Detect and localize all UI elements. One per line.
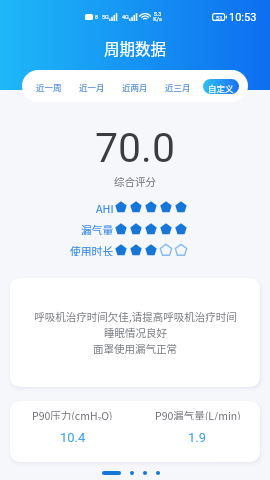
staticText: 5.3 K/s bbox=[153, 11, 162, 23]
button[interactable]: 近一月 bbox=[70, 74, 113, 98]
button[interactable]: P90压力(cmH₂O) bbox=[10, 401, 135, 462]
staticText: 1.9 bbox=[188, 430, 207, 444]
button[interactable]: 自定义 bbox=[203, 79, 239, 94]
button[interactable]: 近两月 bbox=[113, 74, 156, 98]
staticText: P90漏气量(L/min) bbox=[155, 408, 241, 420]
staticText: 周期数据 bbox=[104, 37, 167, 59]
staticText: AHI bbox=[96, 200, 114, 213]
staticText: 使用时长 bbox=[70, 243, 114, 256]
staticText: 10.4 bbox=[60, 430, 86, 444]
staticText: 近一周 bbox=[36, 81, 62, 93]
staticText: 近一月 bbox=[79, 81, 105, 93]
button[interactable]: 近一周 bbox=[28, 74, 70, 98]
staticText: 自定义 bbox=[208, 82, 234, 94]
staticText: 睡眠情况良好 bbox=[104, 325, 167, 339]
staticText: 51 bbox=[216, 14, 223, 21]
staticText: 4G bbox=[122, 14, 129, 20]
button[interactable]: 近三月 bbox=[156, 74, 199, 98]
staticText: 漏气量 bbox=[81, 222, 114, 235]
staticText: 近三月 bbox=[165, 81, 191, 93]
staticText: 综合评分 bbox=[114, 174, 156, 188]
staticText: P90压力(cmH₂O) bbox=[32, 408, 113, 420]
staticText: 近两月 bbox=[122, 81, 148, 93]
button[interactable]: P90漏气量(L/min) bbox=[135, 401, 260, 462]
staticText: 10:53 bbox=[229, 11, 257, 24]
staticText: 70.0 bbox=[95, 124, 175, 168]
staticText: 呼吸机治疗时间欠佳,请提高呼吸机治疗时间 bbox=[34, 309, 237, 323]
staticText: 5G bbox=[102, 14, 109, 20]
staticText: 8 bbox=[95, 14, 98, 20]
staticText: 面罩使用漏气正常 bbox=[93, 341, 177, 355]
